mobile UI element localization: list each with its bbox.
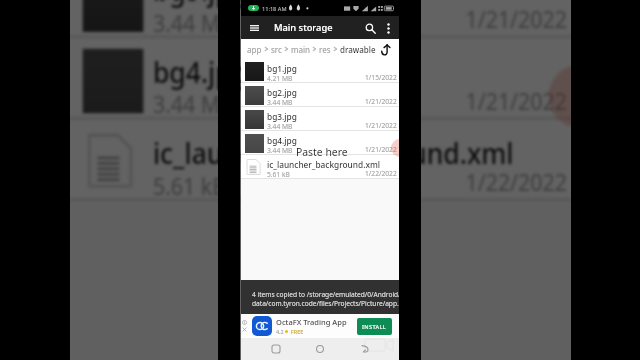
- button[interactable]: ic_launcher_background.xml: [241, 155, 399, 179]
- staticText: 5.61 kB: [153, 171, 226, 201]
- staticText: 3.44 MB: [153, 89, 236, 120]
- button[interactable]: INSTALL: [357, 318, 392, 335]
- staticText: 1/21/2022: [466, 86, 568, 117]
- staticText: bg4.jpg: [153, 52, 249, 89]
- staticText: res: [319, 44, 331, 55]
- button[interactable]: More options: [380, 20, 396, 36]
- staticText: data/com.tyron.code/files/Projects/Pictu…: [252, 299, 399, 308]
- button[interactable]: bg1.jpg: [241, 59, 399, 83]
- staticText: 1/22/2022: [365, 169, 397, 178]
- staticText: drawable: [340, 44, 376, 55]
- staticText: 3.44 MB: [267, 122, 293, 131]
- staticText: 5.61 kB: [267, 170, 290, 179]
- staticText: 11:18 AM: [262, 5, 287, 13]
- button[interactable]: bg4.jpg: [241, 131, 399, 155]
- staticText: 1/21/2022: [466, 5, 568, 35]
- staticText: Paste here: [245, 86, 411, 134]
- staticText: bg1.jpg: [267, 63, 297, 74]
- staticText: 1/21/2022: [365, 97, 397, 106]
- staticText: ic_launcher_background.xml: [267, 159, 381, 170]
- button[interactable]: Home: [310, 339, 330, 359]
- staticText: bg4.jpg: [267, 135, 297, 146]
- staticText: FREE: [291, 328, 304, 335]
- button[interactable]: ic_launcher_background.xml: [70, 120, 571, 201]
- staticText: bg2.jpg: [267, 87, 297, 98]
- button[interactable]: Go to parent folder: [378, 42, 393, 57]
- button[interactable]: bg2.jpg: [241, 83, 399, 107]
- button[interactable]: bg3.jpg: [241, 107, 399, 131]
- staticText: INSTALL: [362, 323, 387, 331]
- staticText: OctaFX Trading App: [276, 317, 347, 327]
- staticText: 3.44 MB: [267, 146, 293, 155]
- button[interactable]: bg4.jpg: [70, 39, 571, 120]
- button[interactable]: bg3.jpg: [70, 0, 571, 39]
- staticText: Paste here: [296, 145, 348, 159]
- button[interactable]: Recent apps: [266, 339, 286, 359]
- staticText: 4.21 MB: [267, 74, 293, 83]
- staticText: 1/22/2022: [466, 167, 568, 198]
- staticText: src: [271, 44, 282, 55]
- staticText: 1/21/2022: [365, 121, 397, 130]
- button[interactable]: Back: [355, 339, 375, 359]
- staticText: app: [247, 44, 262, 55]
- staticText: bg3.jpg: [267, 111, 297, 122]
- button[interactable]: Navigation menu: [245, 19, 263, 37]
- staticText: main: [291, 44, 310, 55]
- staticText: 1/15/2022: [365, 73, 397, 82]
- staticText: bg3.jpg: [153, 0, 249, 8]
- staticText: 4 items copied to /storage/emulated/0/An…: [252, 290, 399, 299]
- staticText: 3.44 MB: [267, 98, 293, 107]
- staticText: ic_launcher_background.xml: [153, 134, 517, 171]
- staticText: Main storage: [274, 21, 333, 34]
- staticText: 1/21/2022: [365, 145, 397, 154]
- button[interactable]: Search: [361, 19, 379, 37]
- staticText: 3.44 MB: [153, 8, 236, 39]
- staticText: 4.2: [276, 328, 284, 335]
